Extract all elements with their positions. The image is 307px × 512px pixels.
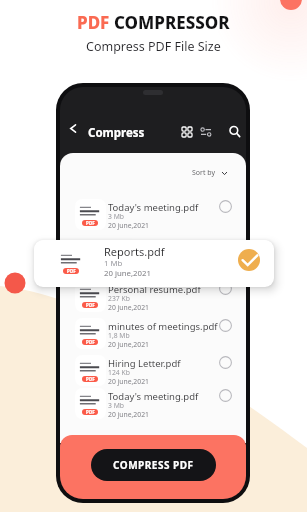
staticText: 20 june,2021 [104,268,151,279]
button[interactable]: Select file [219,319,232,332]
staticText: PDF [86,376,95,382]
staticText: 3 Mb [108,212,124,221]
button[interactable]: Select file [219,282,232,295]
button[interactable]: Selected [238,249,260,271]
staticText: PDF [67,268,76,274]
button[interactable]: Select file [219,356,232,369]
staticText: PDF [86,339,95,345]
button[interactable] [60,281,246,313]
staticText: 20 june,2021 [108,340,149,349]
button[interactable]: Search [225,122,243,140]
staticText: PDF [86,220,95,226]
staticText: Reports.pdf [104,244,165,259]
staticText: minutes of meetings.pdf [108,320,218,333]
staticText: 20 june,2021 [108,410,149,419]
button[interactable]: Filter [197,123,215,141]
button[interactable] [60,355,246,387]
staticText: 20 june,2021 [108,377,149,386]
staticText: Sort by [192,168,216,178]
button[interactable]: Sort by [192,167,227,179]
button[interactable]: Grid view [178,123,196,141]
staticText: PDF [77,11,114,34]
staticText: 124 Kb [108,368,130,377]
staticText: 3 Mb [108,401,124,410]
staticText: PDF [86,409,95,415]
staticText: Personal resume.pdf [108,283,201,296]
staticText: 1,8 Mb [108,331,130,340]
button[interactable]: PDF [34,240,274,287]
button[interactable] [60,388,246,420]
button[interactable] [60,199,246,231]
staticText: Compress PDF File Size [86,38,221,55]
button[interactable]: Back [66,122,79,135]
staticText: 20 june,2021 [108,303,149,312]
staticText: Today's meeting.pdf [108,390,199,403]
button[interactable]: Select file [219,200,232,213]
staticText: Hiring Letter.pdf [108,357,181,370]
staticText: 237 Kb [108,294,130,303]
staticText: 1 Mb [104,258,123,269]
staticText: COMPRESSOR [114,11,230,34]
staticText: Today's meeting.pdf [108,201,199,214]
staticText: 20 june,2021 [108,221,149,230]
button[interactable]: COMPRESS PDF [91,449,216,481]
staticText: COMPRESS PDF [113,458,194,472]
staticText: Compress [88,125,145,141]
staticText: PDF [86,302,95,308]
button[interactable] [60,318,246,350]
button[interactable]: Select file [219,389,232,402]
